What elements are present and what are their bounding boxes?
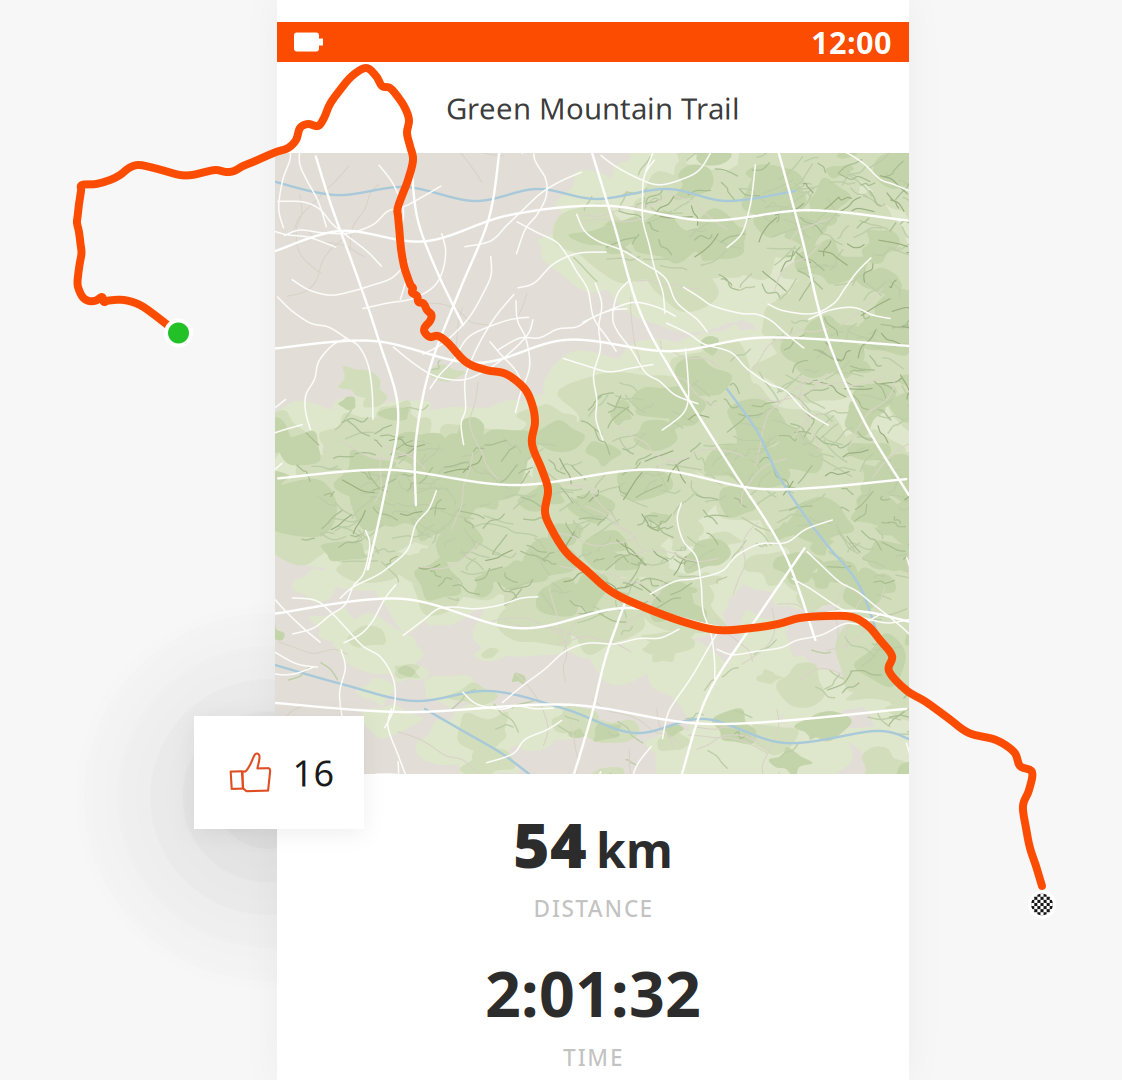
staticText: km (596, 817, 673, 881)
staticText: 2:01:32 (485, 951, 701, 1034)
staticText: DISTANCE (533, 893, 653, 923)
staticText: 16 (292, 749, 334, 796)
staticText: 12:00 (811, 22, 892, 62)
button[interactable]: Give kudos, 16 (194, 716, 364, 829)
staticText: Green Mountain Trail (446, 88, 740, 127)
staticText: 54 (513, 802, 587, 885)
staticText: TIME (563, 1042, 623, 1072)
